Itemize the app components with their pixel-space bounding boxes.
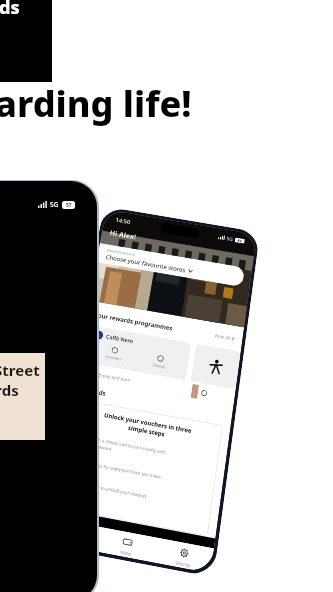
staticText: Settings [175, 559, 191, 568]
staticText: Choose your favourite stores [105, 253, 186, 274]
staticText: 5G [226, 235, 233, 242]
staticText: Your rewards programmes [94, 311, 173, 332]
staticText: Vouchers [105, 354, 122, 361]
button[interactable] [190, 344, 241, 389]
button[interactable]: Explore [41, 517, 101, 550]
staticText: 57 [66, 202, 72, 209]
staticText: Unlock your vouchers in three simple ste… [80, 407, 215, 447]
staticText: Earn points for every purchase you make [79, 459, 161, 480]
button[interactable]: View all [213, 331, 236, 343]
staticText: 5G [50, 200, 59, 209]
staticText: Earn & pay and earn [87, 369, 131, 383]
staticText: 14:50 [115, 216, 131, 226]
staticText: Rewards [79, 385, 107, 397]
staticText: View all [214, 332, 231, 341]
staticText: Rewards [0, 380, 19, 400]
staticText: Rewards at hand [107, 248, 135, 257]
button[interactable] [188, 381, 236, 408]
staticText: High Street [0, 360, 40, 380]
staticText: ds [0, 0, 20, 20]
button[interactable]: Settings [154, 538, 214, 572]
staticText: 57 [237, 238, 242, 243]
button[interactable]: Rewards at hand [96, 243, 245, 287]
staticText: Keep spending to unlock your rewards [69, 479, 147, 499]
staticText: Hi Alex! [109, 228, 137, 242]
button[interactable]: Earn & pay and earn [80, 362, 186, 399]
staticText: Stamps [152, 362, 166, 369]
staticText: arding life! [0, 79, 192, 128]
staticText: Wallet [120, 549, 133, 557]
staticText: Tap with a linked card to earn loyalty a… [83, 434, 165, 462]
button[interactable]: Wallet [97, 527, 157, 561]
staticText: Caffè Nero [105, 333, 134, 345]
button[interactable]: Caffè Nero [84, 325, 191, 380]
